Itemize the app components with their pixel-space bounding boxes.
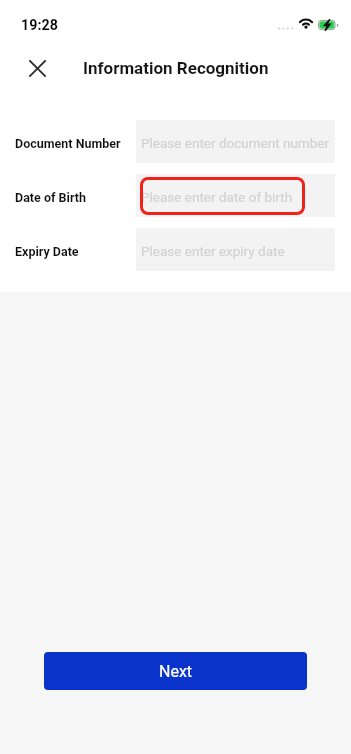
button[interactable]: Date of Birth xyxy=(0,168,351,222)
staticText: Please enter document number xyxy=(141,135,329,151)
staticText: Document Number xyxy=(15,136,121,151)
button[interactable]: Next xyxy=(44,652,307,690)
staticText: Expiry Date xyxy=(15,244,79,259)
staticText: 19:28 xyxy=(21,17,58,34)
button[interactable]: Expiry Date xyxy=(0,222,351,276)
staticText: Please enter date of birth xyxy=(141,189,293,205)
staticText: Please enter expiry date xyxy=(141,243,285,259)
button[interactable]: Close xyxy=(22,53,52,83)
staticText: Information Recognition xyxy=(83,58,269,78)
staticText: Next xyxy=(159,662,193,681)
button[interactable]: Document Number xyxy=(0,114,351,168)
staticText: Date of Birth xyxy=(15,190,86,205)
